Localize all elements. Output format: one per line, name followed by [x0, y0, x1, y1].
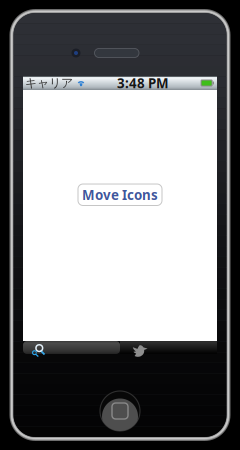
staticText: 3:48 PM [117, 74, 169, 92]
button[interactable]: Move Icons [78, 184, 162, 205]
staticText: Move Icons [82, 186, 158, 204]
button[interactable]: Twitter [120, 341, 217, 354]
staticText: キャリア [25, 76, 73, 90]
button[interactable]: Find People [23, 341, 120, 354]
